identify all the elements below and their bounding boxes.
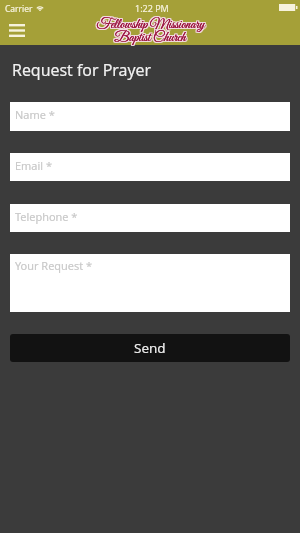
staticText: Baptist Church — [115, 29, 187, 47]
button[interactable]: Open navigation menu — [2, 17, 32, 43]
staticText: Carrier — [5, 3, 33, 15]
staticText: Baptist Church — [114, 29, 186, 47]
staticText: 1:22 PM — [135, 2, 169, 14]
staticText: Fellowship Missionary — [95, 15, 204, 33]
button[interactable]: Email * — [10, 153, 290, 181]
staticText: Name * — [15, 107, 55, 122]
staticText: Fellowship Missionary — [96, 16, 205, 34]
staticText: Fellowship Missionary — [96, 15, 205, 33]
staticText: Request for Prayer — [12, 59, 151, 81]
staticText: Email * — [15, 158, 52, 173]
staticText: Baptist Church — [113, 28, 185, 46]
staticText: Fellowship Missionary — [97, 17, 206, 35]
button[interactable]: Your Request * — [10, 254, 290, 312]
staticText: Baptist Church — [114, 28, 186, 46]
staticText: Fellowship Missionary — [96, 16, 205, 34]
staticText: Fellowship Missionary — [95, 16, 204, 34]
staticText: Baptist Church — [114, 29, 186, 47]
staticText: Baptist Church — [114, 30, 186, 48]
staticText: Baptist Church — [115, 28, 187, 46]
staticText: Baptist Church — [115, 30, 187, 48]
staticText: Fellowship Missionary — [95, 17, 204, 35]
button[interactable]: Send — [10, 334, 290, 362]
staticText: Baptist Church — [114, 29, 186, 47]
staticText: Fellowship Missionary — [96, 17, 205, 35]
staticText: Fellowship Missionary — [96, 16, 205, 34]
staticText: Telephone * — [15, 209, 78, 224]
button[interactable]: Telephone * — [10, 204, 290, 232]
staticText: Baptist Church — [114, 29, 186, 47]
staticText: Your Request * — [15, 258, 93, 273]
staticText: Fellowship Missionary — [97, 16, 206, 34]
staticText: Fellowship Missionary — [96, 16, 205, 34]
staticText: Baptist Church — [113, 29, 185, 47]
button[interactable]: Name * — [10, 102, 290, 131]
staticText: Baptist Church — [113, 30, 185, 48]
staticText: Fellowship Missionary — [97, 15, 206, 33]
staticText: Send — [134, 339, 166, 357]
